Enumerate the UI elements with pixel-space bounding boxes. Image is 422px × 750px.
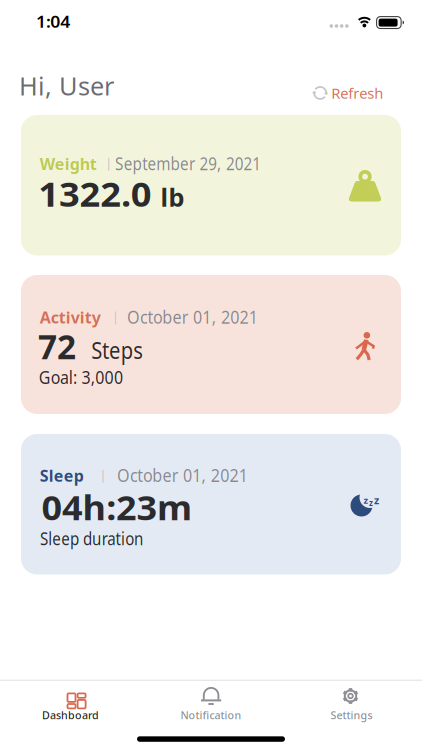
staticText: Hi, User (19, 69, 114, 102)
staticText: Notification (180, 708, 241, 722)
staticText: Activity (40, 307, 101, 328)
staticText: | (112, 307, 119, 325)
staticText: z (374, 493, 379, 507)
staticText: lb (160, 180, 184, 214)
button[interactable]: Notification (141, 682, 281, 744)
staticText: 04h:23m (41, 485, 181, 529)
button[interactable]: Dashboard (0, 682, 141, 744)
staticText: z (363, 494, 368, 506)
staticText: Weight (40, 153, 97, 174)
staticText: 1:04 (36, 11, 67, 32)
staticText: Dashboard (42, 708, 99, 722)
staticText: Refresh (331, 83, 383, 103)
staticText: 72 (38, 324, 76, 368)
staticText: | (105, 154, 112, 171)
staticText: Sleep duration (40, 526, 168, 550)
staticText: Goal: 3,000 (39, 364, 138, 389)
staticText: Settings (331, 708, 373, 722)
staticText: October 01, 2021 (127, 305, 268, 328)
staticText: 1322.0 (38, 172, 142, 216)
staticText: Steps (91, 335, 149, 365)
staticText: Sleep (40, 465, 84, 486)
staticText: September 29, 2021 (115, 152, 281, 175)
button[interactable]: Settings (281, 682, 422, 744)
staticText: October 01, 2021 (117, 464, 258, 487)
staticText: | (99, 466, 106, 483)
button[interactable]: Refresh (310, 79, 385, 107)
staticText: z (369, 497, 373, 508)
